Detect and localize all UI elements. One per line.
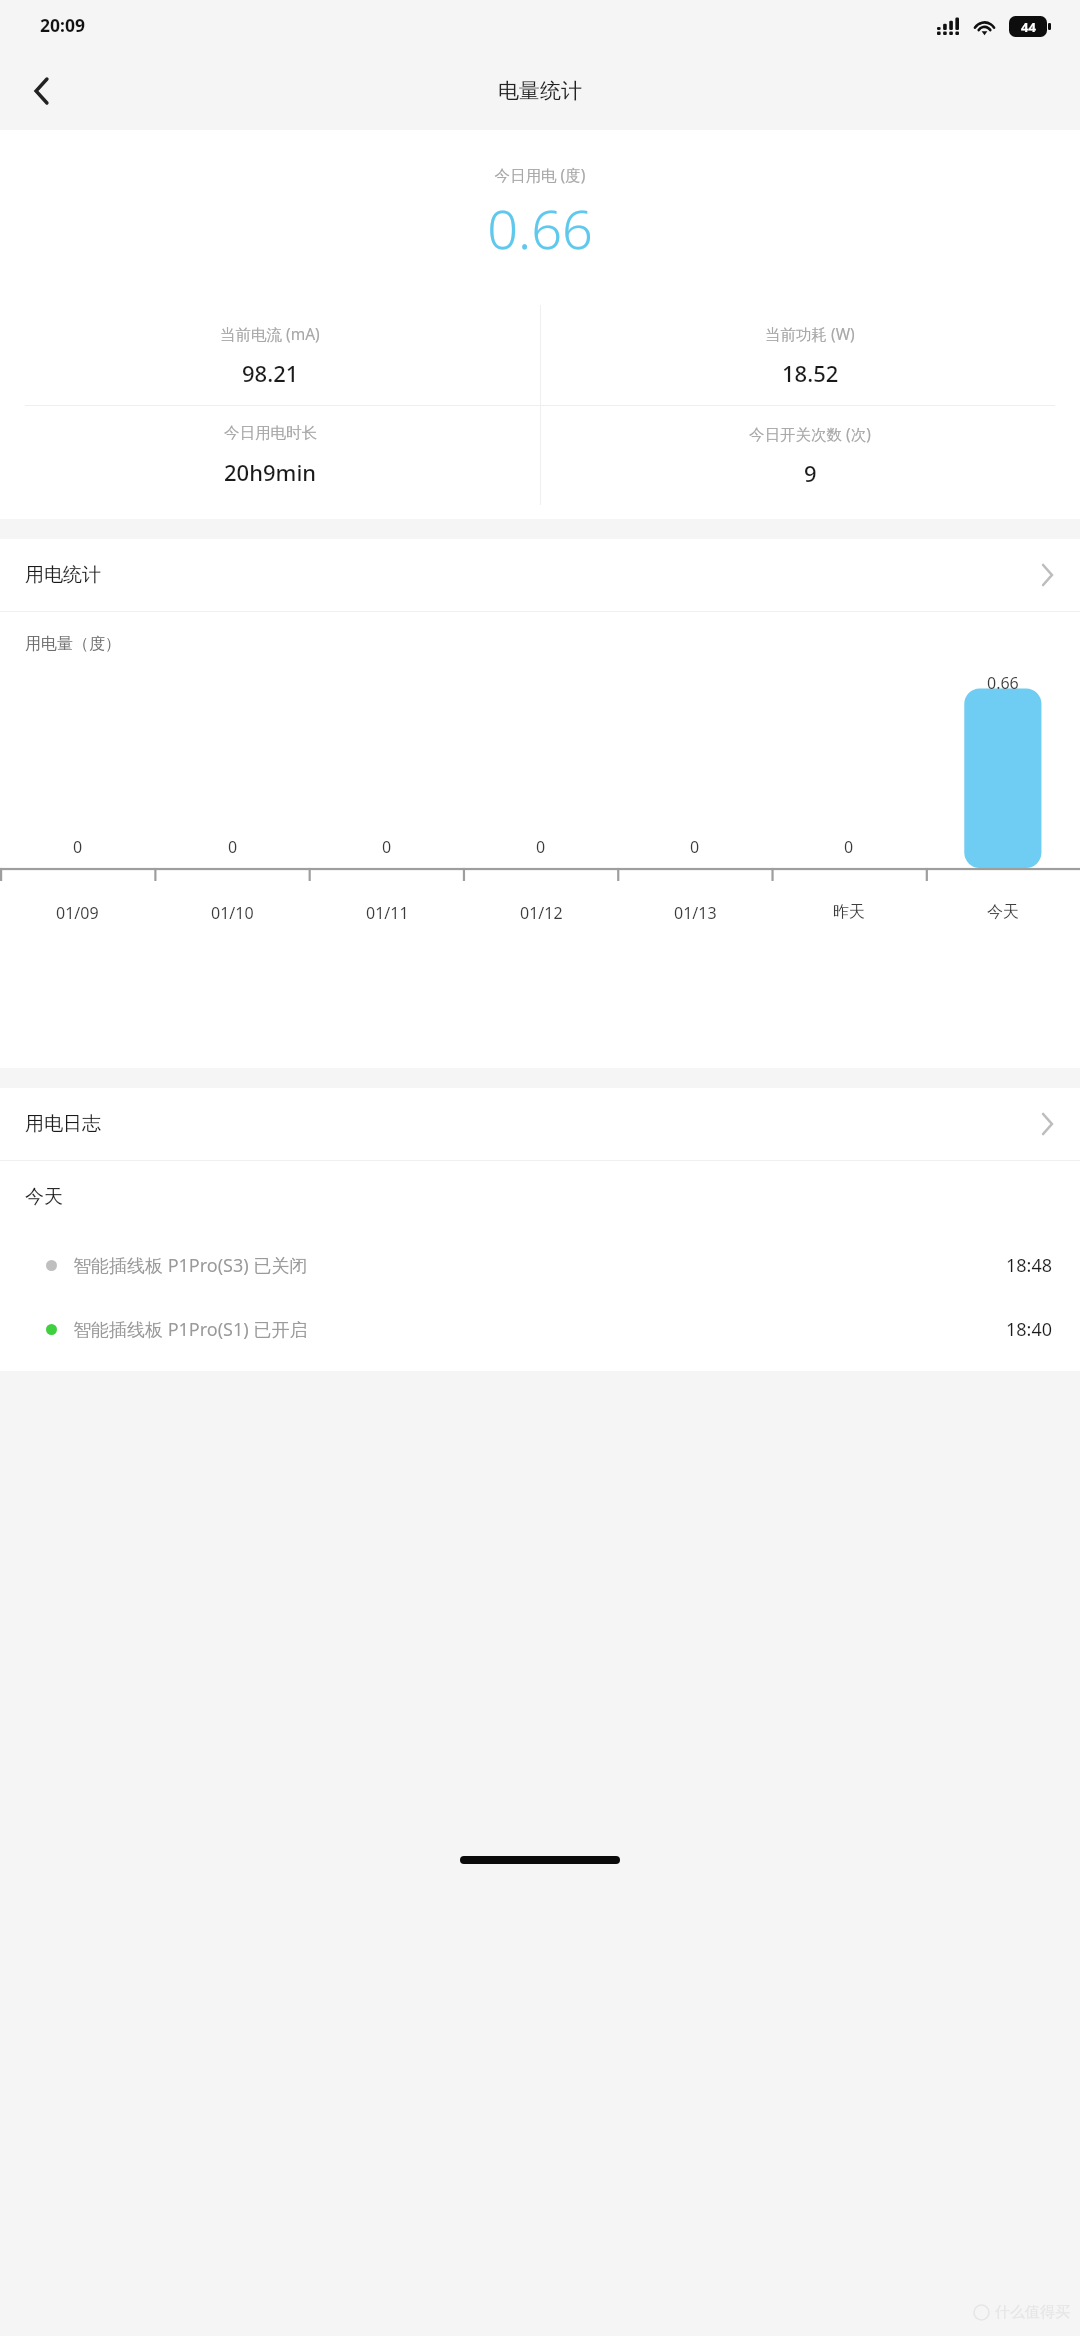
staticText: 今日用电 (度) [0,164,1080,185]
staticText: 今天 [987,902,1019,922]
staticText: 0 [690,836,700,858]
staticText: 电量统计 [498,78,582,104]
staticText: 9 [804,458,817,488]
staticText: 当前功耗 (W) [765,323,855,344]
staticText: 20h9min [224,457,317,487]
staticText: 什么值得买 [995,2303,1070,2322]
staticText: 01/13 [674,902,717,924]
button[interactable]: Back [13,63,69,119]
staticText: 0.66 [0,191,1080,265]
staticText: 当前电流 (mA) [220,323,320,344]
staticText: 今天 [25,1185,63,1209]
staticText: 昨天 [833,902,865,922]
staticText: 0 [73,836,83,858]
staticText: 用电日志 [25,1112,101,1136]
staticText: 智能插线板 P1Pro(S3) 已关闭 [73,1253,308,1278]
staticText: 18.52 [782,358,839,388]
staticText: 今日用电时长 [224,423,317,443]
button[interactable]: 智能插线板 P1Pro(S3) 已关闭 [0,1233,1080,1297]
staticText: 0.66 [987,672,1019,694]
staticText: 用电量（度） [25,634,121,654]
staticText: 01/11 [366,902,409,924]
staticText: 01/12 [520,902,563,924]
staticText: 20:09 [40,13,85,37]
button[interactable]: 智能插线板 P1Pro(S1) 已开启 [0,1297,1080,1361]
button[interactable]: 用电日志 [0,1088,1080,1160]
staticText: 智能插线板 P1Pro(S1) 已开启 [73,1317,308,1342]
staticText: 今日开关次数 (次) [749,423,871,444]
staticText: 0 [382,836,392,858]
staticText: 98.21 [242,358,299,388]
staticText: 18:48 [1006,1253,1053,1278]
staticText: 01/09 [56,902,99,924]
staticText: 44 [1021,18,1036,36]
button[interactable]: 用电统计 [0,539,1080,611]
staticText: 0 [536,836,546,858]
staticText: 01/10 [211,902,254,924]
staticText: 0 [844,836,854,858]
staticText: 0 [228,836,238,858]
staticText: 用电统计 [25,563,101,587]
staticText: 18:40 [1006,1317,1053,1342]
